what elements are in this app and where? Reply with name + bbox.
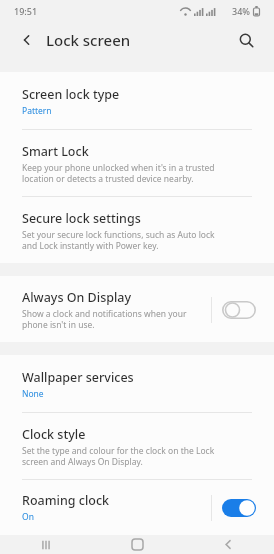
button[interactable]: Back — [183, 535, 274, 554]
button[interactable]: Roaming clock toggle — [212, 493, 258, 523]
staticText: Clock style — [22, 426, 86, 443]
button[interactable]: Recents — [0, 535, 92, 554]
staticText: Show a clock and notifications when your… — [22, 308, 187, 330]
button[interactable]: Roaming clock — [0, 480, 274, 535]
staticText: On — [22, 511, 34, 523]
button[interactable]: Clock style — [0, 413, 274, 479]
button[interactable]: Home — [92, 535, 183, 554]
staticText: Set the type and colour for the clock on… — [22, 445, 215, 467]
staticText: Roaming clock — [22, 492, 110, 509]
staticText: 34% — [232, 5, 250, 17]
staticText: Secure lock settings — [22, 210, 141, 227]
staticText: Keep your phone unlocked when it's in a … — [22, 162, 215, 184]
staticText: 19:51 — [14, 5, 38, 17]
button[interactable]: Secure lock settings — [0, 197, 274, 263]
button[interactable]: Wallpaper services — [0, 355, 274, 412]
staticText: Set your secure lock functions, such as … — [22, 229, 215, 251]
staticText: Wallpaper services — [22, 369, 134, 386]
staticText: Smart Lock — [22, 143, 89, 160]
button[interactable]: Always On Display — [0, 276, 274, 342]
staticText: None — [22, 388, 44, 400]
button[interactable]: Smart Lock — [0, 130, 274, 196]
staticText: Always On Display — [22, 289, 132, 306]
staticText: Pattern — [22, 105, 52, 117]
button[interactable]: Search — [234, 28, 258, 52]
button[interactable]: Screen lock type — [0, 72, 274, 129]
button[interactable]: Always On Display toggle — [212, 295, 258, 325]
button[interactable]: Back — [16, 29, 38, 51]
staticText: Screen lock type — [22, 86, 120, 103]
staticText: Lock screen — [46, 30, 131, 50]
